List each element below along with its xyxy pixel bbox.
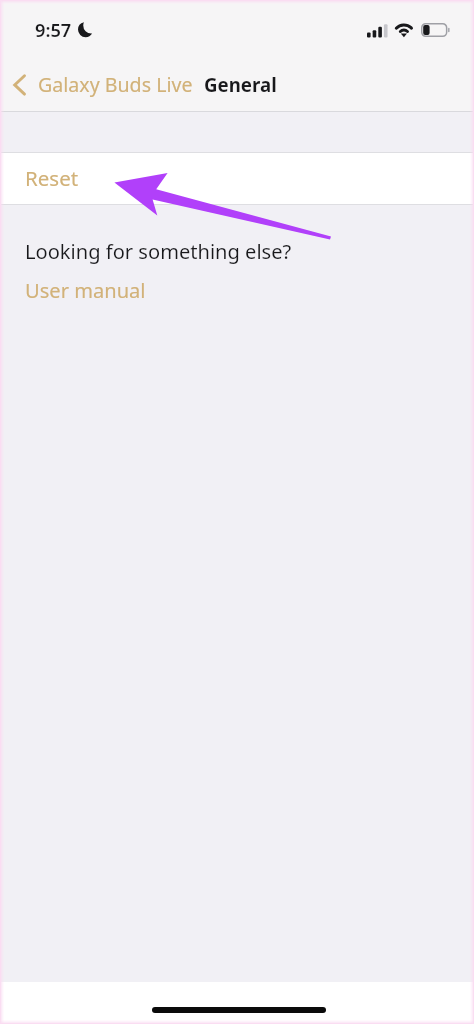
staticText: Galaxy Buds Live [38,71,193,98]
button[interactable]: User manual [25,277,146,304]
button[interactable]: Back [0,67,203,102]
staticText: General [204,72,277,97]
staticText: Reset [25,164,79,192]
button[interactable]: Reset [0,153,474,204]
other: Home indicator [152,1007,326,1013]
other: Back [13,74,25,96]
staticText: 9:57 [35,18,72,43]
staticText: Looking for something else? [25,238,292,265]
